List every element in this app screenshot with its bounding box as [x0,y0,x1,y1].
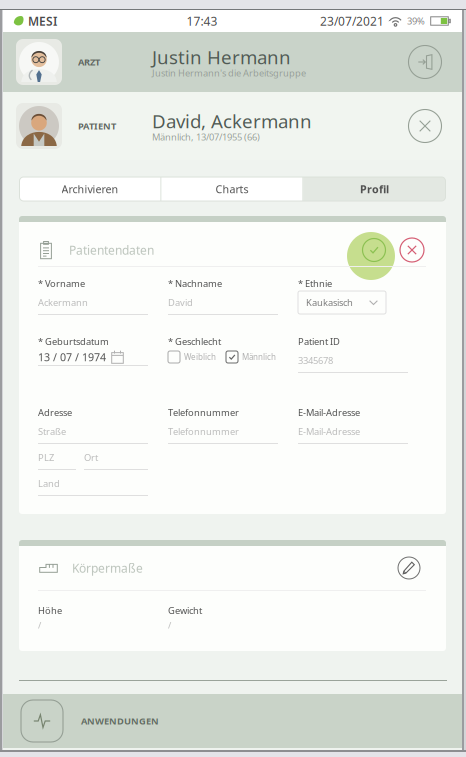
staticText: Männlich, 13/07/1955 (66) [152,131,260,143]
staticText: Patientendaten [69,242,154,258]
staticText: * Nachname [168,277,222,290]
staticText: * Ethnie [298,277,332,290]
staticText: 39% [407,15,425,27]
staticText: / [38,619,41,631]
staticText: Archivieren [61,182,118,196]
staticText: Körpermaße [72,560,143,576]
staticText: Justin Hermann [152,45,291,69]
staticText: Ackermann [38,296,88,309]
staticText: Höhe [38,604,62,617]
staticText: Telefonnummer [168,425,239,438]
staticText: Gewicht [168,604,202,617]
staticText: Land [38,477,60,490]
staticText: Patient ID [298,335,340,348]
button[interactable]: Charts [161,177,302,201]
staticText: Männlich [242,352,276,362]
button[interactable]: Abbrechen [395,233,429,267]
staticText: * Geschlecht [168,335,221,348]
staticText: 17:43 [186,13,217,29]
staticText: 23/07/2021 [320,13,384,29]
staticText: 3345678 [298,354,333,367]
staticText: Justin Hermann's die Arbeitsgruppe [152,67,306,79]
staticText: MESI [28,13,57,29]
staticText: * Vorname [38,277,85,290]
staticText: PATIENT [78,120,116,132]
staticText: Charts [215,182,248,196]
staticText: E-Mail-Adresse [298,406,360,419]
staticText: David, Ackermann [152,109,312,133]
staticText: ANWENDUNGEN [81,715,159,727]
staticText: ARZT [78,56,100,68]
staticText: / [168,619,171,631]
staticText: Kaukasisch [306,296,353,309]
button[interactable]: Bearbeiten [392,551,426,585]
staticText: 13 / 07 / 1974 [38,350,106,364]
staticText: David [168,296,193,309]
button[interactable]: Profil [303,177,445,201]
button[interactable]: Speichern [357,233,391,267]
staticText: Profil [360,182,389,196]
staticText: Telefonnummer [168,406,239,419]
button[interactable]: Abmelden [402,39,448,85]
staticText: Weiblich [184,352,216,362]
button[interactable]: Archivieren [19,177,160,201]
button[interactable]: Patient schließen [402,103,448,149]
staticText: * Geburtsdatum [38,335,109,348]
staticText: E-Mail-Adresse [298,425,360,438]
button[interactable]: ANWENDUNGEN [3,694,223,748]
staticText: Straße [38,425,66,438]
staticText: Adresse [38,406,72,419]
staticText: Ort [84,451,98,464]
staticText: PLZ [38,451,54,464]
